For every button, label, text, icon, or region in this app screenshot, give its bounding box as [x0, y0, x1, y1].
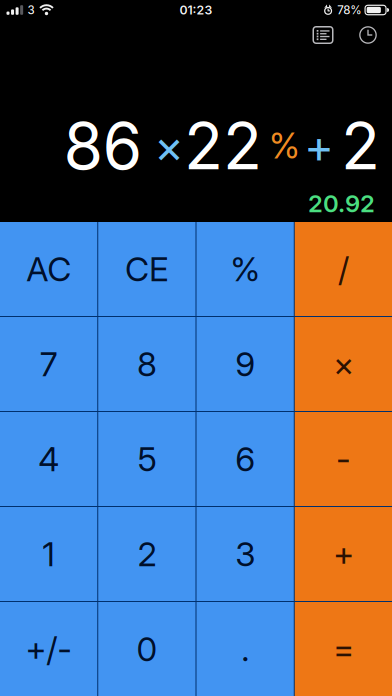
staticText: CE: [125, 249, 169, 289]
staticText: 2: [184, 107, 223, 185]
button[interactable]: 1: [0, 507, 97, 601]
staticText: 8: [63, 107, 103, 185]
staticText: 9: [235, 344, 255, 384]
button[interactable]: =: [295, 602, 392, 696]
button[interactable]: /: [295, 222, 392, 316]
staticText: 3: [235, 534, 255, 574]
button[interactable]: 3: [196, 507, 294, 601]
staticText: AC: [26, 249, 71, 289]
staticText: 4: [38, 439, 59, 479]
button[interactable]: 9: [196, 317, 294, 411]
button[interactable]: +: [295, 507, 392, 601]
staticText: 6: [235, 439, 255, 479]
button[interactable]: 8: [98, 317, 195, 411]
button[interactable]: .: [196, 602, 294, 696]
staticText: 7: [40, 344, 58, 384]
staticText: /: [338, 249, 349, 289]
staticText: 78%: [337, 3, 361, 17]
staticText: 3: [27, 3, 34, 17]
staticText: 6: [102, 107, 142, 185]
button[interactable]: Tape list: [300, 20, 346, 50]
staticText: 2: [341, 107, 380, 185]
staticText: ×: [333, 344, 354, 384]
staticText: ×: [154, 118, 184, 173]
staticText: 1: [42, 534, 55, 574]
button[interactable]: ×: [295, 317, 392, 411]
button[interactable]: -: [295, 412, 392, 506]
staticText: 2: [223, 107, 262, 185]
staticText: =: [333, 629, 354, 669]
button[interactable]: History: [346, 20, 390, 50]
button[interactable]: %: [196, 222, 294, 316]
button[interactable]: 5: [98, 412, 195, 506]
staticText: 01:23: [179, 3, 212, 17]
button[interactable]: 2: [98, 507, 195, 601]
button[interactable]: 4: [0, 412, 97, 506]
button[interactable]: 7: [0, 317, 97, 411]
staticText: %: [269, 125, 300, 167]
staticText: .: [241, 629, 249, 669]
staticText: -: [336, 439, 351, 479]
staticText: 0: [136, 629, 157, 669]
button[interactable]: 6: [196, 412, 294, 506]
staticText: +: [304, 118, 334, 173]
staticText: 2: [137, 534, 156, 574]
staticText: 5: [137, 439, 156, 479]
staticText: 20.92: [308, 189, 375, 218]
staticText: 8: [137, 344, 157, 384]
staticText: %: [230, 249, 260, 289]
button[interactable]: 0: [98, 602, 195, 696]
staticText: +/-: [25, 629, 72, 669]
staticText: +: [333, 534, 354, 574]
button[interactable]: +/-: [0, 602, 97, 696]
button[interactable]: AC: [0, 222, 97, 316]
button[interactable]: CE: [98, 222, 195, 316]
